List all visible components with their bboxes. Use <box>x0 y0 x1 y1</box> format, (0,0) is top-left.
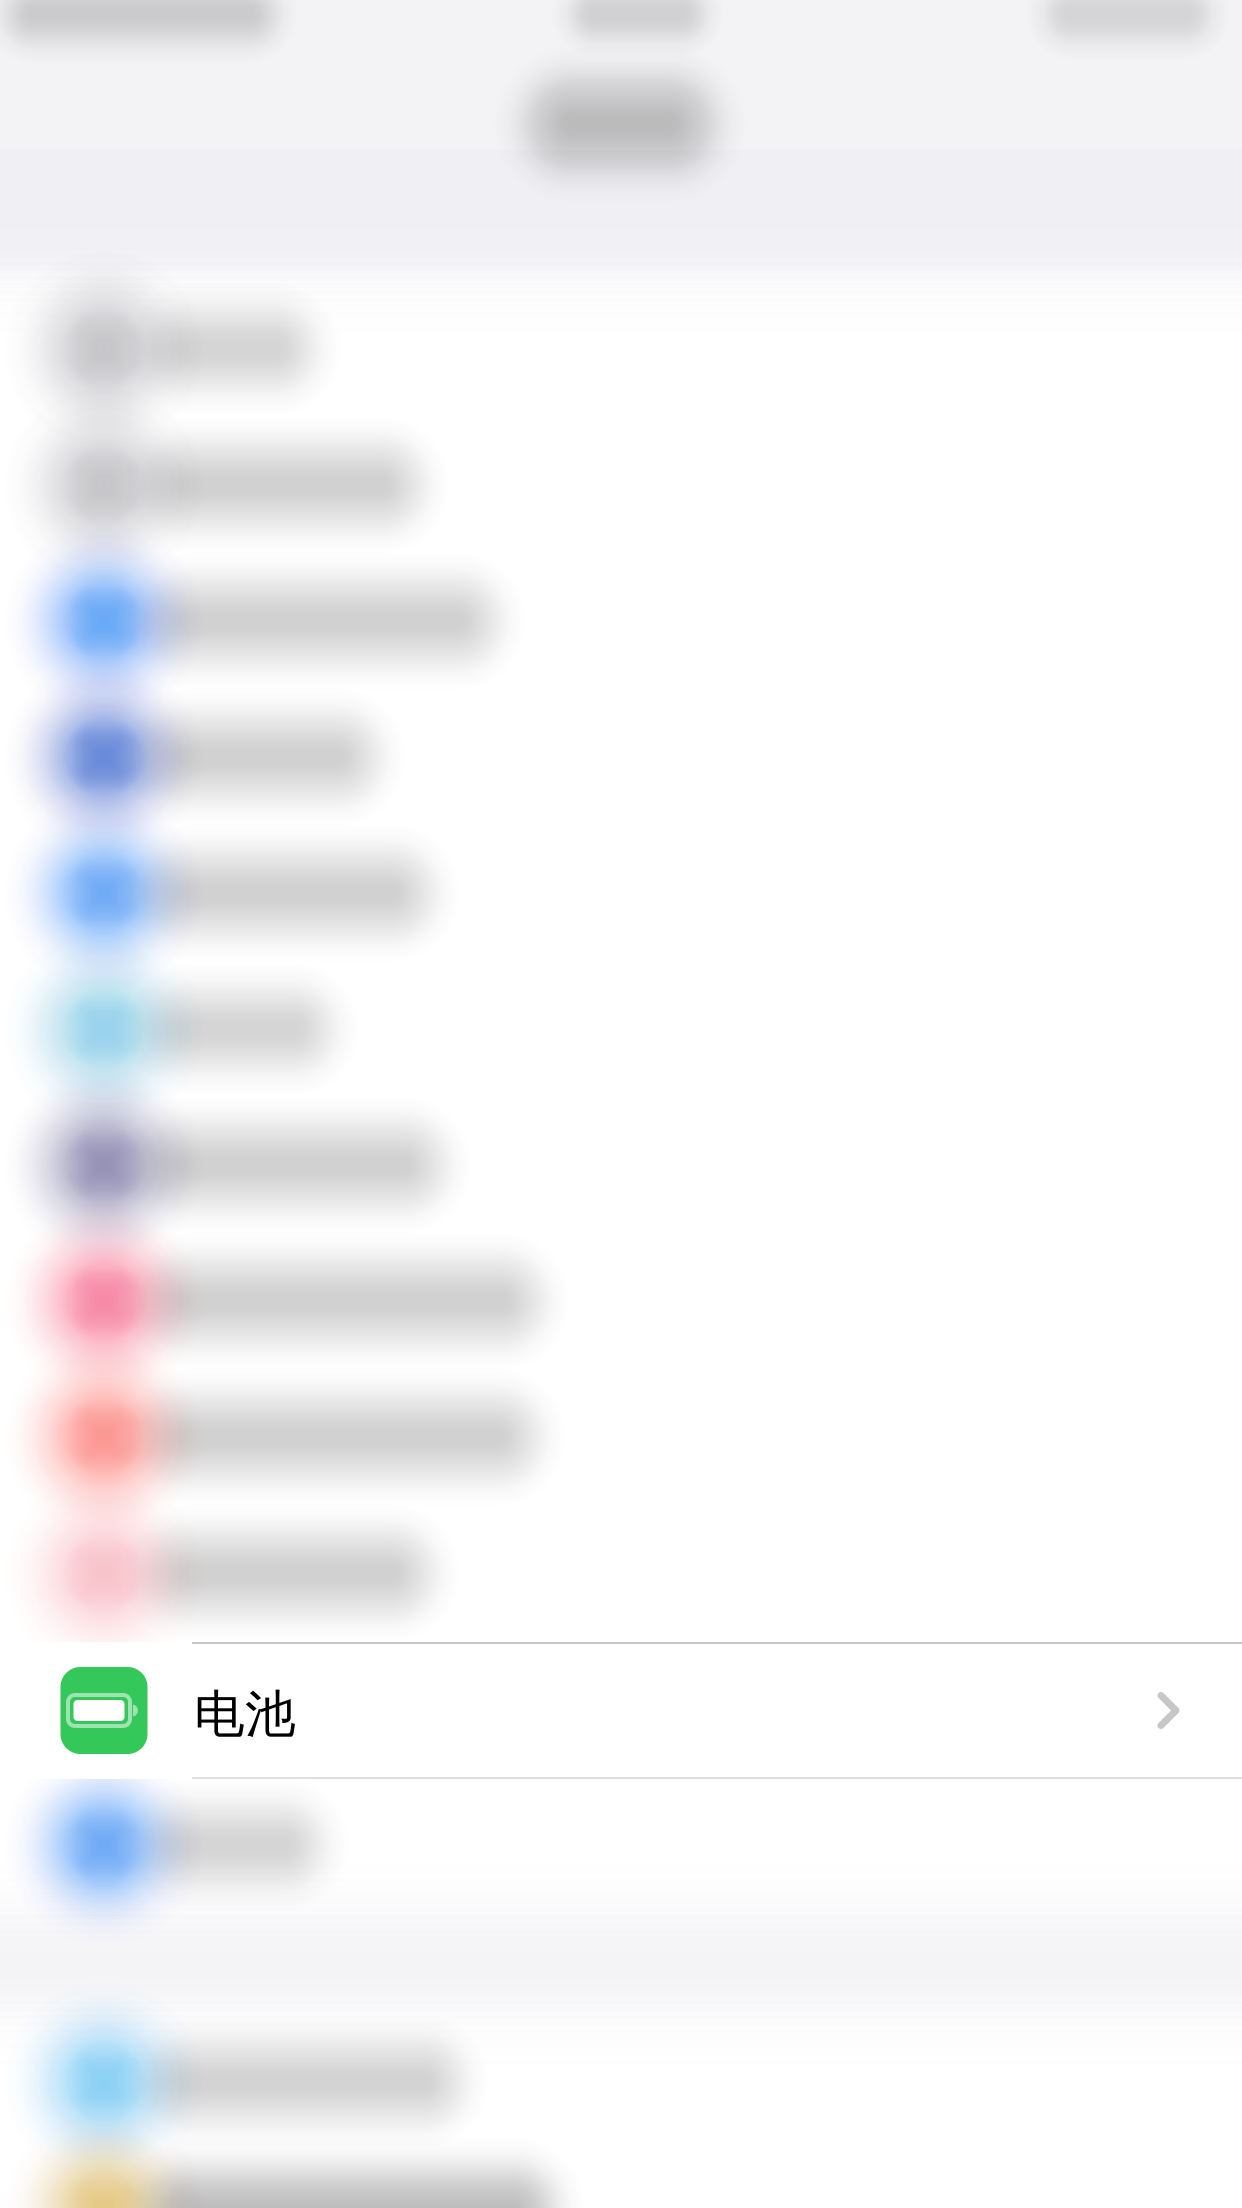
button[interactable]: 电池 <box>0 1642 1242 1779</box>
staticText: 电池 <box>194 1683 296 1746</box>
